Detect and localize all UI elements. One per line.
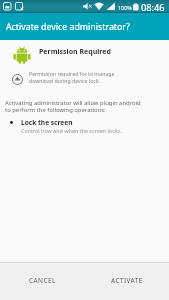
staticText: Activating administrator will allow plug… (5, 99, 141, 114)
staticText: Activate device administrator? (6, 21, 130, 33)
staticText: ACTIVATE (111, 276, 143, 285)
staticText: CANCEL (29, 276, 56, 285)
staticText: Permission Required (39, 47, 111, 57)
staticText: Control how and when the screen locks. (21, 127, 122, 134)
staticText: 100% (118, 4, 132, 11)
staticText: 08:46 (141, 1, 165, 14)
staticText: Permission required for to manage downlo… (29, 70, 115, 85)
button[interactable]: CANCEL (0, 263, 84, 300)
staticText: Lock the screen (21, 118, 73, 127)
button[interactable]: ACTIVATE (84, 263, 169, 300)
